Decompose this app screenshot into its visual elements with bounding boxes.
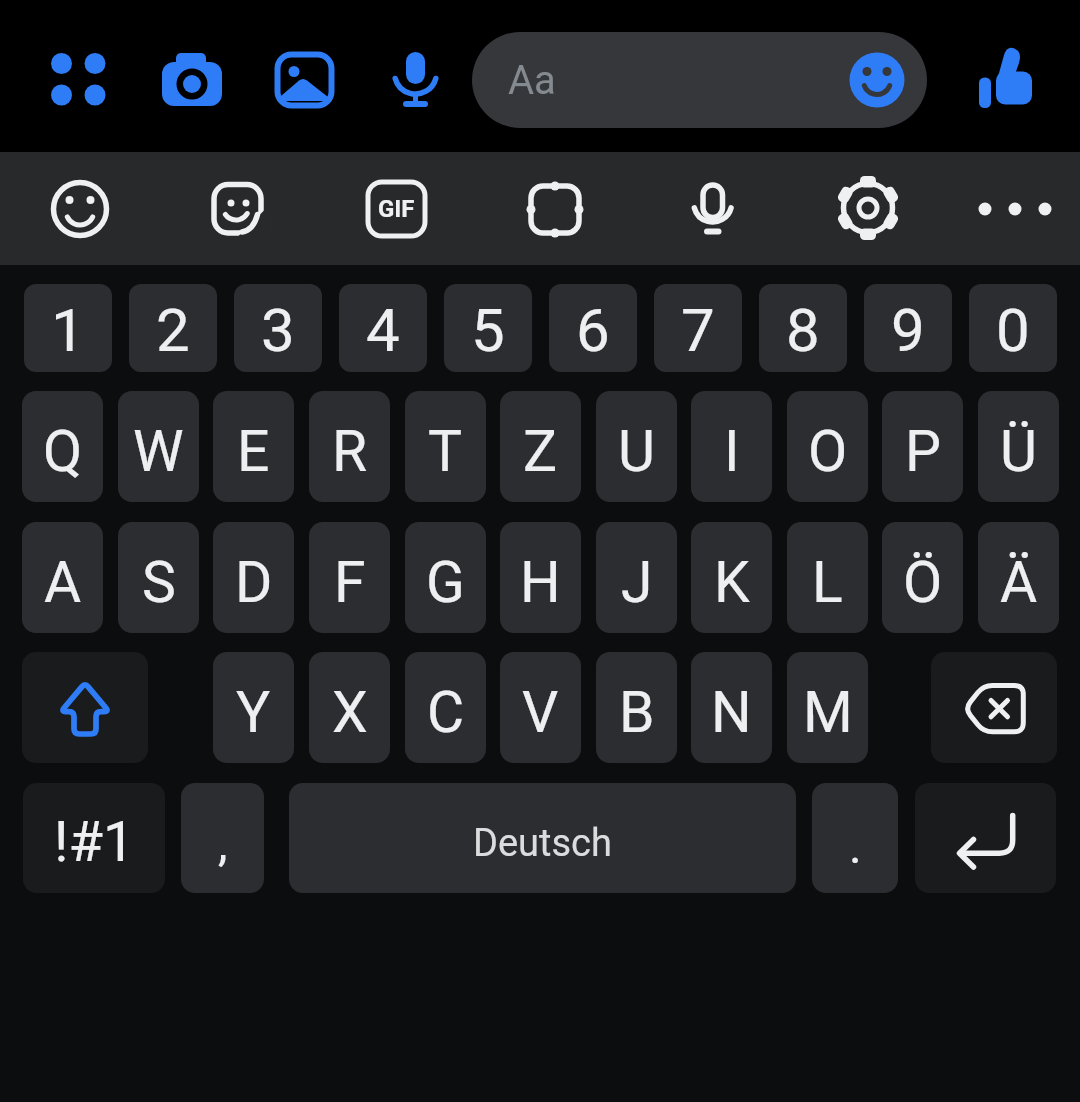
button[interactable]: 0 [969, 284, 1057, 372]
button[interactable] [22, 652, 148, 763]
button[interactable] [967, 161, 1063, 257]
staticText: Ü [1000, 418, 1037, 485]
staticText: A [44, 549, 82, 616]
staticText: X [332, 679, 368, 746]
button[interactable] [820, 161, 916, 257]
button[interactable]: I [691, 391, 772, 502]
staticText: N [711, 679, 752, 746]
staticText: L [812, 549, 843, 616]
staticText: !#1 [54, 809, 135, 875]
button[interactable]: Ä [978, 522, 1059, 633]
button[interactable]: 7 [654, 284, 742, 372]
button[interactable]: D [213, 522, 294, 633]
button[interactable]: R [309, 391, 390, 502]
button[interactable]: 5 [444, 284, 532, 372]
button[interactable]: 2 [129, 284, 217, 372]
button[interactable]: S [118, 522, 199, 633]
staticText: Aa [508, 57, 556, 104]
button[interactable]: K [691, 522, 772, 633]
button[interactable]: G [405, 522, 486, 633]
button[interactable]: Deutsch [289, 783, 796, 893]
button[interactable]: , [181, 783, 264, 893]
staticText: U [618, 418, 655, 485]
staticText: 8 [786, 295, 820, 365]
staticText: V [522, 679, 559, 746]
staticText: . [849, 818, 862, 874]
button[interactable]: Ö [882, 522, 963, 633]
button[interactable]: N [691, 652, 772, 763]
button[interactable]: L [787, 522, 868, 633]
button[interactable]: C [405, 652, 486, 763]
button[interactable]: A [22, 522, 103, 633]
staticText: R [332, 418, 368, 485]
button[interactable]: 3 [234, 284, 322, 372]
staticText: K [714, 549, 750, 616]
staticText: 0 [996, 295, 1030, 365]
button[interactable] [348, 161, 444, 257]
button[interactable]: Z [500, 391, 581, 502]
button[interactable]: B [596, 652, 677, 763]
staticText: , [218, 815, 228, 871]
button[interactable] [189, 161, 285, 257]
staticText: Ä [1000, 549, 1038, 616]
staticText: F [334, 549, 366, 616]
button[interactable] [260, 35, 350, 125]
button[interactable]: V [500, 652, 581, 763]
button[interactable]: Aa [472, 32, 927, 128]
staticText: Deutsch [473, 821, 612, 866]
staticText: M [803, 679, 853, 746]
button[interactable]: 9 [864, 284, 952, 372]
staticText: C [427, 679, 465, 746]
staticText: P [905, 418, 941, 485]
button[interactable] [150, 35, 240, 125]
button[interactable]: O [787, 391, 868, 502]
staticText: W [133, 418, 184, 485]
button[interactable]: 8 [759, 284, 847, 372]
button[interactable]: . [812, 783, 898, 893]
button[interactable] [915, 783, 1056, 893]
staticText: G [426, 549, 465, 616]
staticText: 7 [681, 295, 715, 365]
staticText: B [619, 679, 655, 746]
staticText: 6 [576, 295, 610, 365]
staticText: J [621, 549, 653, 616]
button[interactable]: !#1 [23, 783, 165, 893]
button[interactable]: W [118, 391, 199, 502]
button[interactable]: T [405, 391, 486, 502]
staticText: H [520, 549, 561, 616]
button[interactable] [663, 161, 759, 257]
button[interactable] [370, 35, 460, 125]
button[interactable] [507, 161, 603, 257]
staticText: 2 [156, 295, 190, 365]
button[interactable]: J [596, 522, 677, 633]
staticText: E [237, 418, 270, 485]
button[interactable]: M [787, 652, 868, 763]
button[interactable]: Ü [978, 391, 1059, 502]
button[interactable]: Q [22, 391, 103, 502]
staticText: Q [43, 418, 83, 485]
button[interactable] [32, 161, 128, 257]
staticText: Ö [903, 549, 943, 616]
button[interactable]: H [500, 522, 581, 633]
staticText: 1 [51, 295, 85, 365]
button[interactable] [33, 35, 123, 125]
button[interactable]: F [309, 522, 390, 633]
staticText: 3 [261, 295, 295, 365]
staticText: O [808, 418, 848, 485]
staticText: S [142, 549, 176, 616]
button[interactable] [931, 652, 1057, 763]
staticText: T [428, 418, 463, 485]
button[interactable]: E [213, 391, 294, 502]
button[interactable]: P [882, 391, 963, 502]
button[interactable] [965, 35, 1055, 125]
button[interactable]: 4 [339, 284, 427, 372]
button[interactable]: 1 [24, 284, 112, 372]
button[interactable]: X [309, 652, 390, 763]
button[interactable]: U [596, 391, 677, 502]
staticText: I [724, 418, 740, 485]
button[interactable]: 6 [549, 284, 637, 372]
staticText: 4 [366, 295, 400, 365]
staticText: GIF [378, 195, 415, 223]
staticText: 9 [891, 295, 925, 365]
button[interactable]: Y [213, 652, 294, 763]
